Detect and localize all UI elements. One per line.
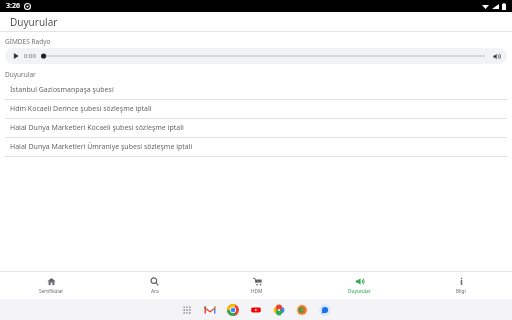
button[interactable]: YouTube [249, 303, 262, 316]
button[interactable]: Halal Dunya Marketleri Ümraniye şubesi s… [0, 138, 512, 157]
staticText: 3:26 [6, 1, 20, 11]
button[interactable]: Play [11, 51, 21, 61]
button[interactable]: All apps [181, 304, 193, 316]
staticText: 0:00 [24, 52, 36, 60]
button[interactable]: Messages [318, 303, 331, 316]
staticText: İstanbul Gaziosmanpaşa şubesi [10, 85, 114, 95]
button[interactable]: HDM [206, 272, 308, 299]
button[interactable]: Gmail [203, 303, 216, 316]
staticText: Sertifikalar [39, 288, 64, 295]
staticText: Hdm Kocaeli Derince şubesi sözleşme ipta… [10, 104, 152, 114]
staticText: Duyurular [10, 15, 58, 29]
button[interactable]: Bilgi [410, 272, 512, 299]
button[interactable]: App [295, 303, 308, 316]
button[interactable]: Volume [491, 51, 501, 61]
button[interactable]: Duyurular [308, 272, 410, 299]
button[interactable]: İstanbul Gaziosmanpaşa şubesi [0, 81, 512, 100]
button[interactable]: Chrome [226, 303, 239, 316]
staticText: Bilgi [456, 288, 466, 295]
staticText: GİMDES Radyo [5, 37, 51, 46]
button[interactable]: Sertifikalar [0, 272, 103, 299]
staticText: Halal Dunya Marketleri Ümraniye şubesi s… [10, 142, 193, 152]
staticText: Duyurular [348, 288, 371, 295]
button[interactable]: Google Photos [272, 303, 285, 316]
staticText: Halal Dunya Marketleri Kocaeli şubesi sö… [10, 123, 184, 133]
staticText: HDM [251, 288, 263, 295]
button[interactable]: Seek bar [41, 51, 485, 61]
button[interactable]: Ara [103, 272, 206, 299]
button[interactable]: Halal Dunya Marketleri Kocaeli şubesi sö… [0, 119, 512, 138]
staticText: Duyurular [5, 70, 36, 79]
button[interactable]: Hdm Kocaeli Derince şubesi sözleşme ipta… [0, 100, 512, 119]
staticText: Ara [151, 288, 159, 295]
